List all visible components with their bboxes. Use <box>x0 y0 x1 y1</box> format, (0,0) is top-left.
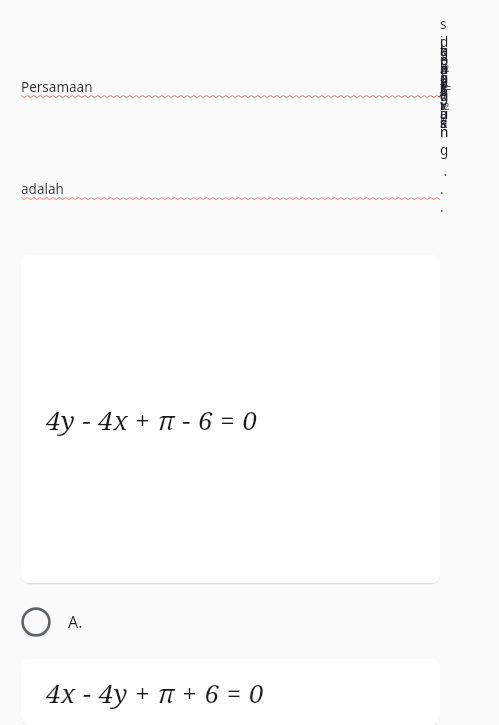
staticText: A. <box>68 611 83 633</box>
button[interactable]: Select option A. <box>21 599 440 645</box>
staticText: Persamaan <box>21 78 93 96</box>
staticText: 4y − 4x + π − 6 = 0 <box>46 402 258 437</box>
staticText: adalah <box>21 180 64 198</box>
button[interactable]: 4x − 4y + π + 6 = 0 <box>21 659 440 725</box>
staticText: 4x − 4y + π + 6 = 0 <box>46 675 265 710</box>
button[interactable]: 4y − 4x + π − 6 = 0 <box>21 255 440 583</box>
